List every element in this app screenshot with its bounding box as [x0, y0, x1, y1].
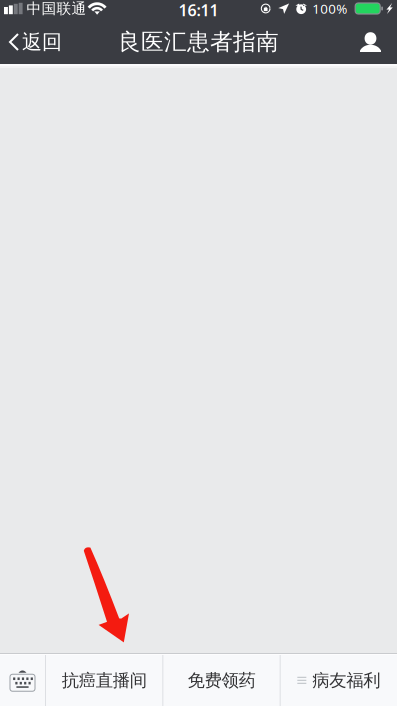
staticText: 返回: [22, 30, 62, 54]
staticText: 病友福利: [312, 670, 380, 691]
staticText: 100%: [312, 0, 347, 17]
button[interactable]: 抗癌直播间: [46, 655, 162, 706]
button[interactable]: Keyboard: [0, 655, 45, 706]
button[interactable]: Profile: [345, 20, 397, 64]
staticText: 抗癌直播间: [62, 670, 147, 691]
staticText: 中国联通: [27, 0, 87, 17]
button[interactable]: 返回: [0, 20, 72, 64]
staticText: 良医汇患者指南: [118, 28, 279, 56]
staticText: 免费领药: [187, 670, 255, 691]
button[interactable]: 病友福利: [281, 655, 397, 706]
button[interactable]: 免费领药: [163, 655, 280, 706]
staticText: 16:11: [178, 0, 218, 21]
